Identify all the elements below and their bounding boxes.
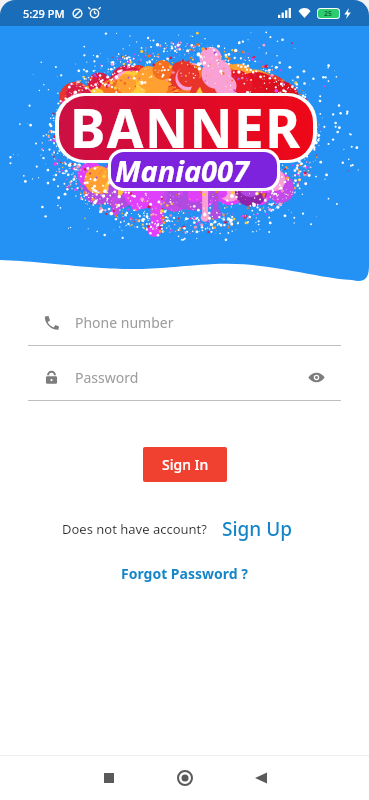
button[interactable]: Home <box>162 756 208 800</box>
button[interactable]: Show password <box>303 364 329 390</box>
button[interactable]: Sign Up <box>222 516 293 542</box>
staticText: 5:29 PM <box>23 6 65 21</box>
staticText: Sign Up <box>222 516 293 542</box>
staticText: Does not have account? <box>62 520 207 538</box>
staticText: Forgot Password ? <box>121 564 248 583</box>
staticText: Password <box>75 368 139 387</box>
button[interactable]: Sign In <box>143 447 227 482</box>
button[interactable]: Back <box>238 756 284 800</box>
staticText: Phone number <box>75 313 174 332</box>
button[interactable]: Phone number <box>28 308 341 346</box>
staticText: BANNER <box>70 91 302 163</box>
button[interactable]: Forgot Password ? <box>121 564 248 583</box>
button[interactable]: Recents <box>86 756 132 800</box>
staticText: 25 <box>324 9 333 18</box>
button[interactable]: Password <box>28 363 341 401</box>
staticText: Sign In <box>162 455 209 474</box>
staticText: Mania007 <box>115 151 249 190</box>
